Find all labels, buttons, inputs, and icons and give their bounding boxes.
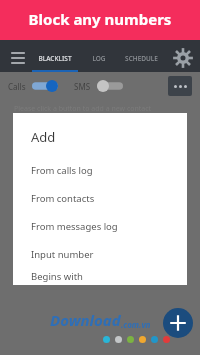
button[interactable]: SCHEDULE xyxy=(117,44,166,72)
staticText: Download xyxy=(50,310,121,330)
staticText: LOG xyxy=(92,54,106,63)
button[interactable]: Calls xyxy=(8,80,58,92)
button[interactable]: Begins with xyxy=(13,268,187,285)
button[interactable]: Input number xyxy=(13,240,187,268)
staticText: Begins with xyxy=(31,270,83,283)
staticText: Block any numbers xyxy=(0,9,200,29)
staticText: From messages log xyxy=(31,220,118,233)
button[interactable]: Menu xyxy=(7,47,29,69)
button[interactable]: From calls log xyxy=(13,156,187,184)
staticText: From calls log xyxy=(31,164,93,177)
staticText: From contacts xyxy=(31,192,95,205)
staticText: BLACKLIST xyxy=(38,54,72,63)
button[interactable]: BLACKLIST xyxy=(30,44,80,72)
button[interactable]: Settings xyxy=(173,48,193,68)
staticText: SMS xyxy=(74,81,91,92)
staticText: Calls xyxy=(8,81,26,92)
button[interactable]: SMS xyxy=(74,80,123,92)
staticText: SCHEDULE xyxy=(125,54,158,63)
button[interactable]: From contacts xyxy=(13,184,187,212)
button[interactable]: Add xyxy=(163,308,193,338)
staticText: Please click a button to add a new conta… xyxy=(14,104,152,114)
staticText: Input number xyxy=(31,248,94,261)
button[interactable]: LOG xyxy=(80,44,117,72)
staticText: Add xyxy=(31,128,56,146)
button[interactable]: More options xyxy=(168,76,192,96)
staticText: .com.vn xyxy=(121,319,151,330)
button[interactable]: From messages log xyxy=(13,212,187,240)
